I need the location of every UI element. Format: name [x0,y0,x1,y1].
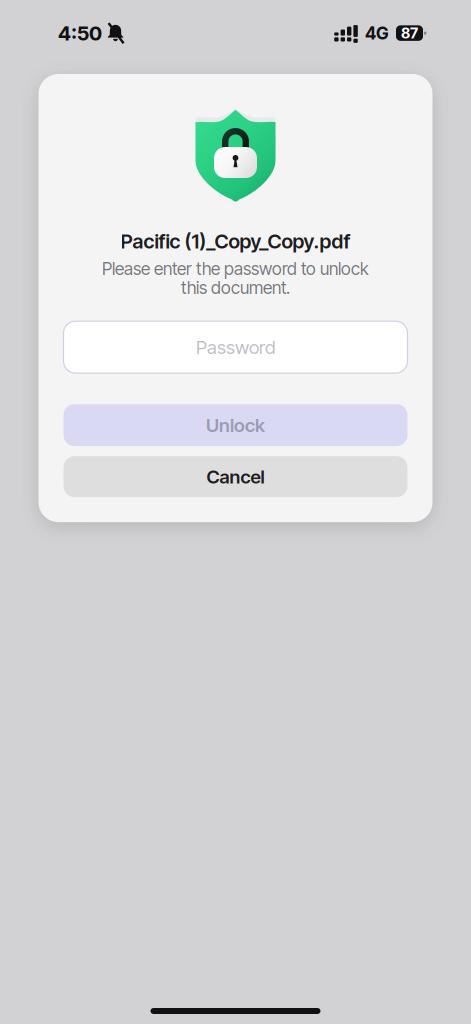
button[interactable]: Password [63,321,407,373]
button[interactable]: Unlock [63,404,407,446]
staticText: 87 [401,24,418,42]
staticText: Unlock [206,414,265,436]
staticText: Password [196,336,275,358]
staticText: this document. [181,277,290,298]
staticText: 4:50 [58,21,102,45]
staticText: Pacific (1)_Copy_Copy.pdf [120,229,350,253]
staticText: Cancel [206,465,264,488]
staticText: Please enter the password to unlock [102,258,369,279]
button[interactable]: Cancel [63,456,407,497]
staticText: 4G [365,23,389,44]
